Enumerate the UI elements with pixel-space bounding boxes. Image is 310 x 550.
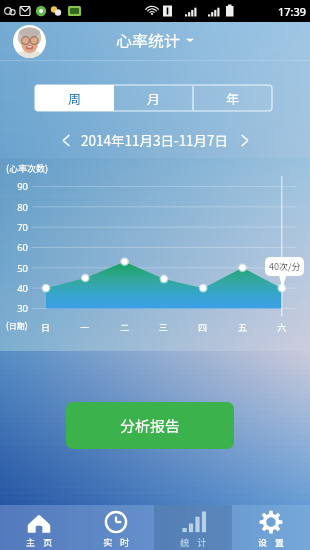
staticText: 分析报告 [120,415,181,437]
staticText: 实 时 [103,536,133,549]
staticText: 40 [12,282,28,295]
staticText: 70 [12,221,28,234]
staticText: 日 [41,321,51,334]
button[interactable]: 月 [114,85,193,111]
button[interactable]: 主 页 [0,505,77,550]
button[interactable]: Profile [13,25,46,58]
staticText: (心率次数) [6,162,49,175]
staticText: 40次/分 [269,260,301,273]
staticText: (日期) [6,320,28,332]
staticText: 心率统计 [116,28,181,51]
button[interactable]: 设 置 [232,505,310,550]
button[interactable]: 周 [35,85,114,111]
staticText: 二 [120,321,130,334]
staticText: 六 [277,321,287,334]
staticText: 年 [226,89,240,108]
staticText: 90 [12,180,28,193]
staticText: 30 [12,302,28,315]
staticText: 统 计 [180,536,210,549]
staticText: 五 [238,321,248,334]
button[interactable]: 40次/分 [265,257,304,276]
staticText: 主 页 [26,536,56,549]
staticText: 月 [147,89,161,108]
staticText: 周 [68,89,82,108]
button[interactable]: 心率统计 [110,25,200,54]
button[interactable]: Next week [232,128,256,152]
button[interactable]: 实 时 [77,505,154,550]
button[interactable]: 统 计 [154,505,232,550]
staticText: 2014年11月3日-11月7日 [81,130,229,150]
button[interactable]: 分析报告 [66,402,234,449]
staticText: 一 [80,321,90,334]
staticText: 80 [12,201,28,214]
staticText: 17:39 [278,4,307,19]
button[interactable]: Previous week [54,128,78,152]
staticText: 四 [198,321,208,334]
staticText: 设 置 [258,536,288,549]
staticText: 60 [12,241,28,254]
button[interactable]: 年 [193,85,272,111]
staticText: 50 [12,262,28,275]
staticText: 三 [159,321,169,334]
